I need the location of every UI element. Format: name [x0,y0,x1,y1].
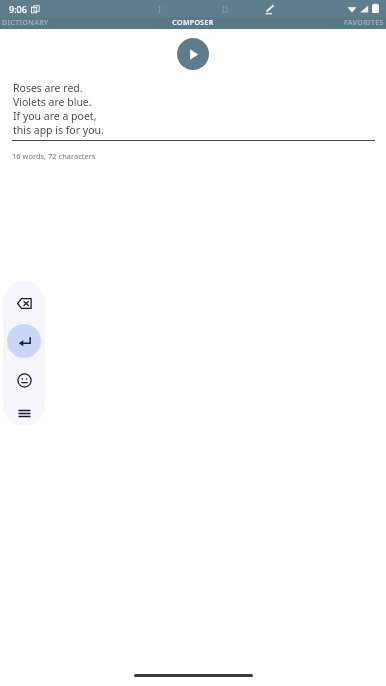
staticText: FAVORITES [344,18,384,28]
staticText: DICTIONARY [2,18,49,28]
staticText: D [222,3,229,15]
staticText: I [158,3,162,15]
button[interactable]: FAVORITES [257,17,386,29]
staticText: COMPOSER [172,18,214,28]
button[interactable]: Backspace [8,287,40,319]
button[interactable]: Play [177,38,209,70]
button[interactable]: Emoji [8,364,40,396]
staticText: If you are a poet, [13,109,97,123]
staticText: Roses are red. [13,81,83,95]
staticText: Violets are blue. [13,95,92,109]
button[interactable]: DICTIONARY [0,17,128,29]
staticText: 16 words, 72 characters [12,151,96,161]
button[interactable]: COMPOSER [128,17,257,29]
staticText: this app is for you. [13,123,104,137]
button[interactable]: Enter [7,324,41,358]
staticText: 9:06 [9,3,27,15]
button[interactable]: Menu [8,401,40,426]
button[interactable]: Roses are red. [13,81,374,137]
